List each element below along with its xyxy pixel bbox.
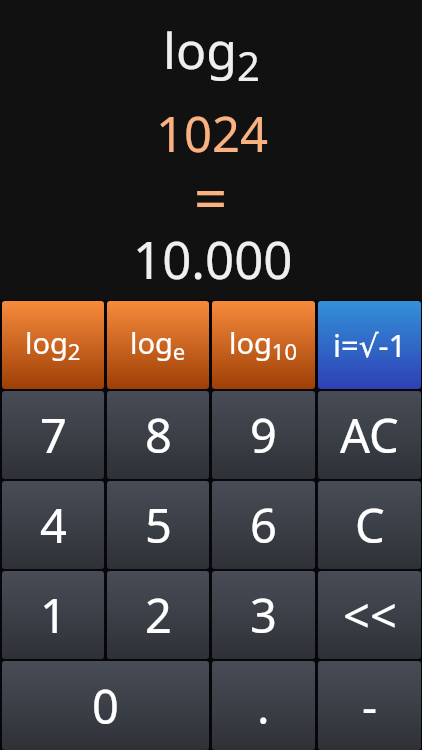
staticText: AC bbox=[340, 403, 399, 467]
staticText: . bbox=[257, 674, 270, 738]
button[interactable]: natural log bbox=[107, 301, 209, 389]
staticText: 9 bbox=[250, 403, 277, 467]
button[interactable]: zero bbox=[2, 661, 209, 750]
staticText: - bbox=[362, 674, 378, 738]
button[interactable]: 7 bbox=[2, 391, 104, 479]
button[interactable]: << bbox=[318, 571, 421, 659]
staticText: log2 bbox=[25, 323, 81, 367]
button[interactable]: 6 bbox=[212, 481, 315, 569]
staticText: log10 bbox=[229, 323, 298, 367]
staticText: 1024 bbox=[156, 100, 269, 167]
staticText: C bbox=[355, 493, 385, 557]
button[interactable]: 9 bbox=[212, 391, 315, 479]
button[interactable]: decimal point bbox=[212, 661, 315, 750]
button[interactable]: 1 bbox=[2, 571, 104, 659]
button[interactable]: imaginary unit bbox=[318, 301, 421, 389]
staticText: 5 bbox=[145, 493, 172, 557]
staticText: log2 bbox=[163, 16, 260, 92]
staticText: i=√-1 bbox=[333, 324, 407, 366]
staticText: 0 bbox=[92, 674, 119, 738]
staticText: 7 bbox=[40, 403, 67, 467]
button[interactable]: log base 10 bbox=[212, 301, 315, 389]
staticText: 3 bbox=[250, 583, 277, 647]
staticText: 1 bbox=[40, 583, 67, 647]
staticText: 10.000 bbox=[133, 224, 293, 293]
staticText: 6 bbox=[250, 493, 277, 557]
staticText: = bbox=[194, 158, 228, 237]
staticText: 8 bbox=[145, 403, 172, 467]
button[interactable]: AC bbox=[318, 391, 421, 479]
button[interactable]: C bbox=[318, 481, 421, 569]
button[interactable]: 3 bbox=[212, 571, 315, 659]
staticText: 2 bbox=[145, 583, 172, 647]
staticText: << bbox=[343, 583, 397, 647]
button[interactable]: minus bbox=[318, 661, 421, 750]
button[interactable]: log base 2 bbox=[2, 301, 104, 389]
staticText: loge bbox=[130, 323, 186, 367]
button[interactable]: 2 bbox=[107, 571, 209, 659]
button[interactable]: 4 bbox=[2, 481, 104, 569]
button[interactable]: 8 bbox=[107, 391, 209, 479]
button[interactable]: 5 bbox=[107, 481, 209, 569]
staticText: 4 bbox=[40, 493, 67, 557]
